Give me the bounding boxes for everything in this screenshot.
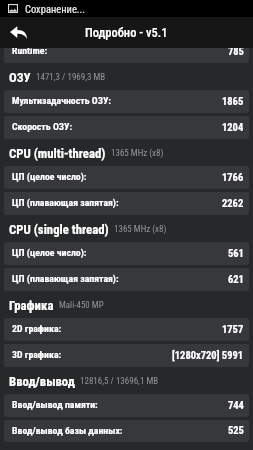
staticText: 785 bbox=[228, 48, 244, 57]
button[interactable]: ЦП (целое число): bbox=[4, 242, 249, 265]
staticText: Графика bbox=[9, 298, 54, 313]
staticText: 621 bbox=[228, 273, 244, 285]
staticText: CPU (multi-thread) bbox=[9, 146, 106, 161]
button[interactable]: Скорость ОЗУ: bbox=[4, 116, 249, 139]
staticText: Runtime: bbox=[12, 48, 48, 56]
button[interactable]: 2D графика: bbox=[4, 318, 249, 341]
staticText: Сохранение... bbox=[25, 3, 86, 15]
staticText: [1280x720] 5991 bbox=[172, 349, 244, 361]
staticText: 525 bbox=[228, 424, 244, 436]
staticText: 1757 bbox=[222, 323, 244, 335]
staticText: 1365 MHz (x8) bbox=[114, 224, 167, 235]
staticText: 744 bbox=[228, 399, 244, 411]
button[interactable]: Runtime: bbox=[4, 48, 249, 63]
staticText: 561 bbox=[228, 247, 244, 259]
staticText: Скорость ОЗУ: bbox=[12, 121, 73, 132]
button[interactable]: ЦП (целое число): bbox=[4, 166, 249, 189]
staticText: CPU (single thread) bbox=[9, 222, 109, 237]
staticText: Mali-450 MP bbox=[59, 300, 104, 311]
button[interactable]: Ввод/вывод памяти: bbox=[4, 394, 249, 417]
staticText: 1766 bbox=[222, 171, 244, 183]
button[interactable]: 3D графика: bbox=[4, 344, 249, 367]
staticText: Подробно - v5.1 bbox=[85, 25, 168, 40]
staticText: 2D графика: bbox=[12, 323, 62, 334]
staticText: ЦП (целое число): bbox=[12, 247, 87, 258]
button[interactable]: Мультизадачность ОЗУ: bbox=[4, 90, 249, 113]
staticText: 12816,5 / 13696,1 MB bbox=[80, 376, 159, 387]
staticText: ЦП (плавающая запятая): bbox=[12, 197, 119, 208]
staticText: 1865 bbox=[222, 95, 244, 107]
staticText: 1471,3 / 1969,3 MB bbox=[36, 72, 106, 83]
staticText: ЦП (плавающая запятая): bbox=[12, 273, 119, 284]
button[interactable]: Ввод/вывод базы данных: bbox=[4, 420, 249, 442]
button[interactable]: Back bbox=[0, 17, 37, 48]
staticText: Ввод/вывод базы данных: bbox=[12, 425, 123, 436]
staticText: Ввод/вывод памяти: bbox=[12, 399, 98, 410]
button[interactable]: ЦП (плавающая запятая): bbox=[4, 268, 249, 291]
staticText: 1204 bbox=[222, 121, 244, 133]
staticText: Ввод/вывод bbox=[9, 374, 75, 389]
staticText: Мультизадачность ОЗУ: bbox=[12, 95, 111, 106]
staticText: 1365 MHz (x8) bbox=[111, 148, 164, 159]
staticText: 2262 bbox=[222, 197, 244, 209]
button[interactable]: ЦП (плавающая запятая): bbox=[4, 192, 249, 215]
staticText: ЦП (целое число): bbox=[12, 171, 87, 182]
staticText: 3D графика: bbox=[12, 349, 62, 360]
staticText: ОЗУ bbox=[9, 70, 31, 85]
